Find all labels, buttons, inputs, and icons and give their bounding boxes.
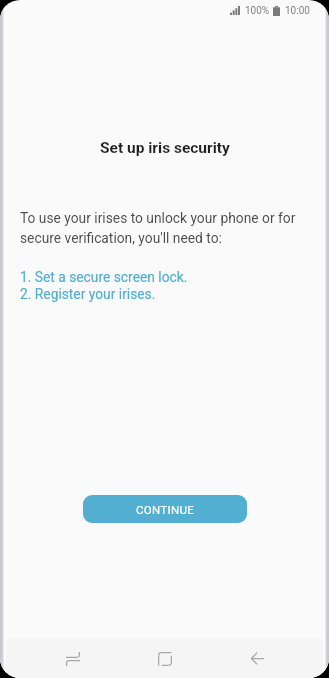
staticText: Set up iris security [100, 139, 230, 157]
button[interactable]: Recents [27, 639, 119, 678]
staticText: To use your irises to unlock your phone … [20, 210, 310, 246]
button[interactable]: CONTINUE [83, 495, 247, 523]
staticText: 10:00 [285, 5, 310, 17]
staticText: 2. Register your irises. [20, 286, 156, 302]
staticText: 100% [245, 5, 270, 17]
button[interactable]: Back [211, 639, 303, 678]
staticText: CONTINUE [136, 503, 195, 516]
button[interactable]: Home [119, 639, 211, 678]
staticText: 1. Set a secure screen lock. [20, 269, 188, 285]
